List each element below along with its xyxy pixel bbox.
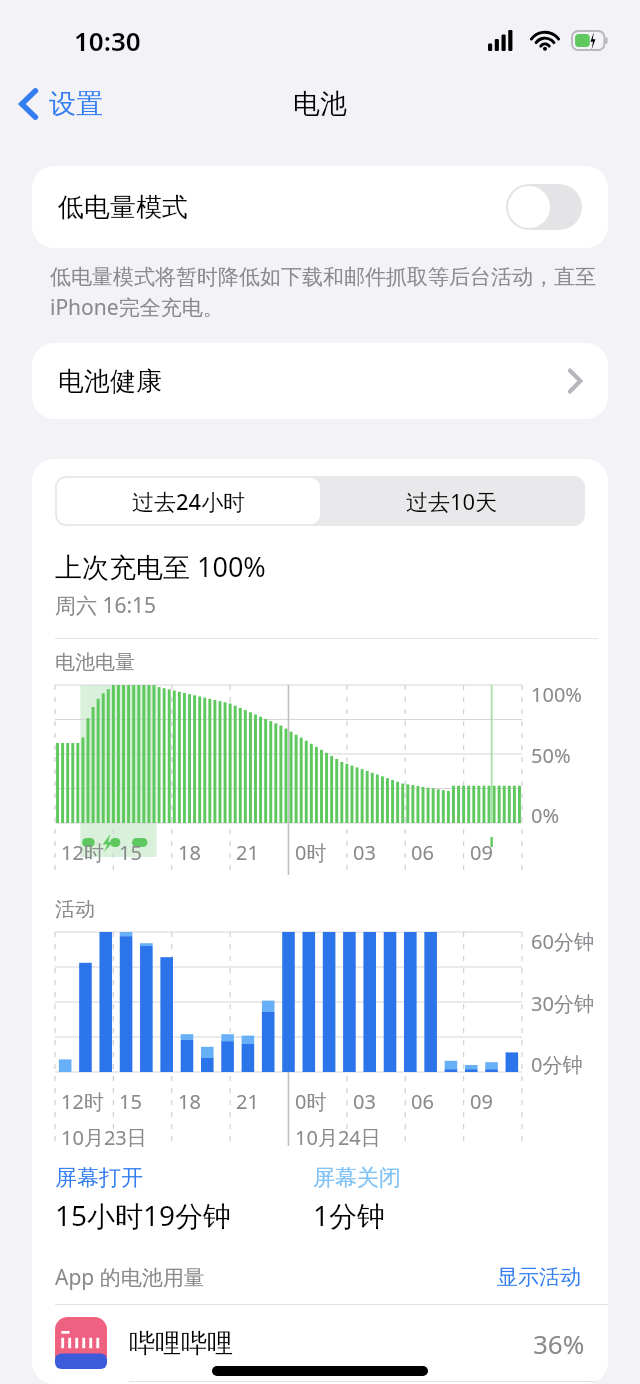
button[interactable]: 低电量模式 (32, 166, 608, 248)
button[interactable]: 显示活动 (493, 1260, 585, 1294)
staticText: 电池 (293, 87, 347, 121)
staticText: 设置 (49, 87, 103, 121)
staticText: 电池电量 (55, 650, 135, 675)
staticText: 12时 (61, 839, 104, 866)
staticText: 06 (411, 839, 434, 866)
staticText: 18 (178, 1088, 201, 1115)
staticText: 电池健康 (58, 365, 568, 398)
staticText: 上次充电至 100% (55, 548, 266, 585)
staticText: 0% (531, 802, 560, 829)
staticText: 屏幕关闭 (313, 1164, 401, 1192)
staticText: 50% (531, 742, 571, 769)
button[interactable]: 过去24小时 (57, 478, 320, 524)
staticText: 09 (470, 1088, 493, 1115)
staticText: 60分钟 (531, 928, 594, 955)
staticText: 显示活动 (497, 1264, 581, 1290)
staticText: 低电量模式将暂时降低如下载和邮件抓取等后台活动，直至 iPhone完全充电。 (50, 262, 600, 321)
staticText: 03 (353, 1088, 376, 1115)
staticText: 18 (178, 839, 201, 866)
staticText: 0时 (295, 839, 327, 866)
staticText: 过去10天 (406, 486, 498, 516)
button[interactable]: 低电量模式开关 (506, 184, 582, 230)
staticText: 10月24日 (295, 1124, 381, 1150)
button[interactable]: 哔哩哔哩 (32, 1305, 608, 1381)
staticText: 1分钟 (313, 1196, 386, 1234)
staticText: 屏幕打开 (55, 1164, 143, 1192)
staticText: 09 (470, 839, 493, 866)
staticText: 低电量模式 (58, 191, 506, 224)
staticText: 12时 (61, 1088, 104, 1115)
staticText: 0分钟 (531, 1051, 583, 1078)
staticText: 10:30 (74, 23, 141, 58)
staticText: 30分钟 (531, 990, 594, 1017)
staticText: 0时 (295, 1088, 327, 1115)
staticText: 过去24小时 (132, 486, 246, 516)
staticText: 100% (531, 681, 582, 708)
staticText: 哔哩哔哩 (129, 1327, 533, 1360)
staticText: 15小时19分钟 (55, 1196, 232, 1234)
staticText: 10月23日 (61, 1124, 147, 1150)
button[interactable]: 设置 (0, 81, 115, 127)
staticText: 03 (353, 839, 376, 866)
staticText: 36% (533, 1326, 585, 1361)
staticText: 活动 (55, 897, 95, 922)
staticText: 06 (411, 1088, 434, 1115)
staticText: App 的电池用量 (55, 1263, 493, 1292)
staticText: 15 (119, 839, 142, 866)
staticText: 15 (119, 1088, 142, 1115)
button[interactable]: 过去10天 (320, 478, 583, 524)
staticText: 21 (236, 1088, 259, 1115)
staticText: 21 (236, 839, 259, 866)
button[interactable]: 电池健康 (32, 343, 608, 419)
staticText: 周六 16:15 (55, 591, 157, 620)
